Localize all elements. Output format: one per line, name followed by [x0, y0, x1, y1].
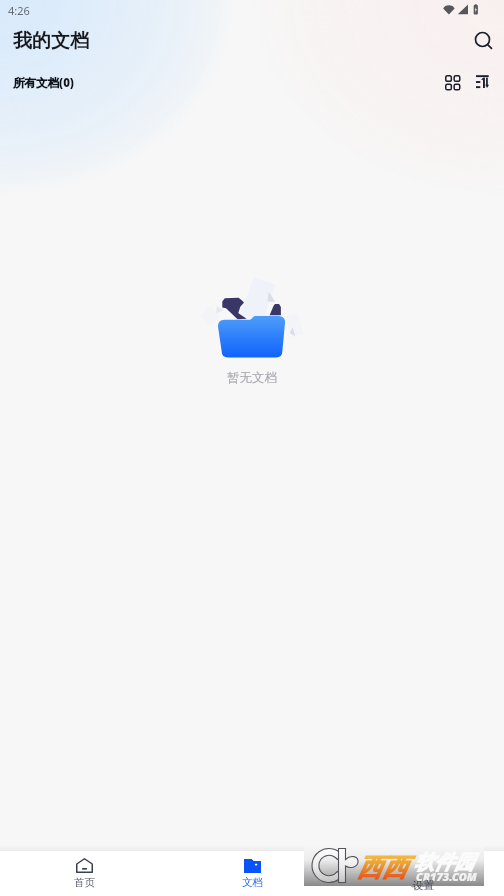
staticText: 所有文档(0)	[13, 75, 74, 91]
button[interactable]: 首页	[0, 851, 168, 896]
staticText: 设置	[410, 876, 431, 889]
staticText: 暂无文档	[227, 370, 277, 386]
button[interactable]: Grid view	[437, 67, 467, 97]
button[interactable]: 文档	[168, 851, 336, 896]
staticText: 文档	[242, 876, 263, 889]
staticText: CR173.COM	[416, 869, 477, 884]
staticText: 西西	[357, 852, 407, 883]
staticText: 首页	[74, 876, 95, 889]
staticText: 4:26	[8, 3, 30, 18]
staticText: 我的文档	[13, 29, 89, 53]
button[interactable]: Search	[465, 22, 503, 60]
staticText: 设置	[413, 879, 434, 892]
staticText: 软件园	[414, 850, 474, 875]
button[interactable]: Sort	[467, 67, 497, 97]
button[interactable]: 设置	[336, 851, 504, 896]
